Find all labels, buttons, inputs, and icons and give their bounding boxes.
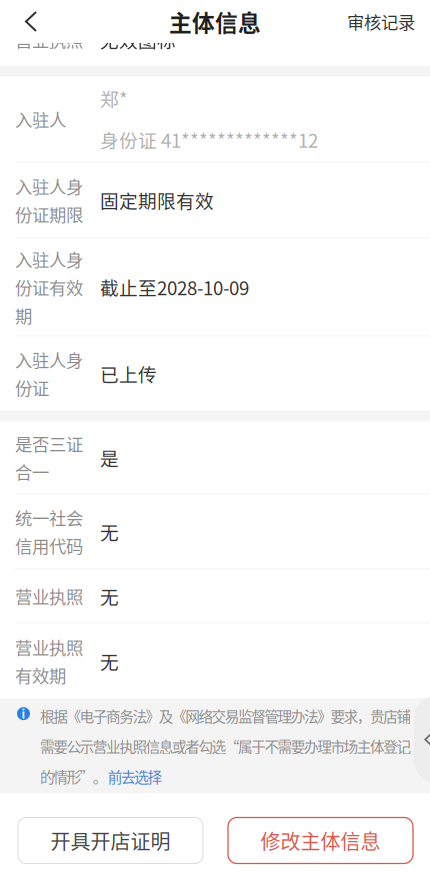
button[interactable]: 审核记录 (347, 0, 430, 43)
staticText: 入驻人身 (15, 246, 83, 271)
staticText: 期 (15, 302, 32, 328)
staticText: 是否三证 (15, 431, 83, 456)
button[interactable]: 前去选择 (108, 766, 162, 787)
staticText: 份证 (15, 375, 49, 400)
staticText: 根据《电子商务法》及《网络交易监督管理办法》要求，贵店铺 (40, 705, 411, 726)
staticText: 需要公示营业执照信息或者勾选“属于不需要办理市场主体登记 (40, 735, 411, 757)
staticText: 无 (100, 582, 119, 609)
staticText: 截止至2028-10-09 (100, 273, 249, 300)
staticText: 合一 (15, 459, 49, 484)
staticText: 已上传 (100, 360, 157, 387)
staticText: 入驻人 (15, 106, 66, 132)
button[interactable]: 展开侧边栏 (414, 695, 430, 783)
staticText: 修改主体信息 (260, 826, 380, 855)
button[interactable]: 开具开店证明 (18, 817, 203, 863)
staticText: 营业执照 (15, 27, 83, 52)
staticText: 有效期 (15, 662, 66, 688)
staticText: 入驻人身 (15, 347, 83, 372)
staticText: 份证有效 (15, 274, 83, 300)
staticText: 无 (100, 647, 119, 674)
staticText: 审核记录 (347, 9, 415, 34)
staticText: 身份证 41*************12 (100, 126, 318, 153)
staticText: 主体信息 (169, 5, 261, 38)
staticText: 营业执照 (15, 634, 83, 659)
button[interactable]: 修改主体信息 (228, 817, 413, 863)
staticText: 统一社会 (15, 505, 83, 530)
staticText: 的情形”。 (40, 766, 108, 787)
staticText: 固定期限有效 (100, 186, 214, 213)
staticText: i (21, 704, 25, 722)
staticText: 是 (100, 444, 119, 471)
staticText: 无效图标 (100, 26, 176, 53)
staticText: 营业执照 (15, 583, 83, 609)
staticText: 开具开店证明 (50, 826, 170, 855)
button[interactable]: 返回 (0, 0, 62, 43)
staticText: 入驻人身 (15, 173, 83, 198)
staticText: 前去选择 (108, 766, 162, 787)
staticText: 信用代码 (15, 533, 83, 558)
staticText: 无 (100, 518, 119, 545)
staticText: 郑* (100, 85, 128, 112)
staticText: 份证期限 (15, 201, 83, 227)
